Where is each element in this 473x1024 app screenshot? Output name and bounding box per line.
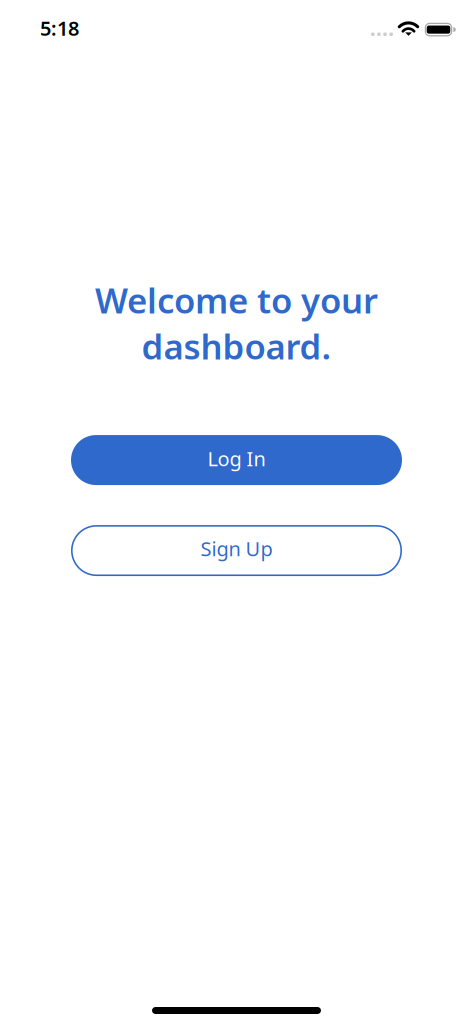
staticText: Sign Up (200, 535, 272, 562)
staticText: 5:18 (40, 15, 79, 41)
button[interactable]: Log In (71, 435, 402, 485)
staticText: Log In (207, 445, 265, 472)
staticText: Welcome to your (95, 277, 378, 323)
staticText: dashboard. (141, 323, 331, 369)
button[interactable]: Sign Up (71, 525, 402, 576)
